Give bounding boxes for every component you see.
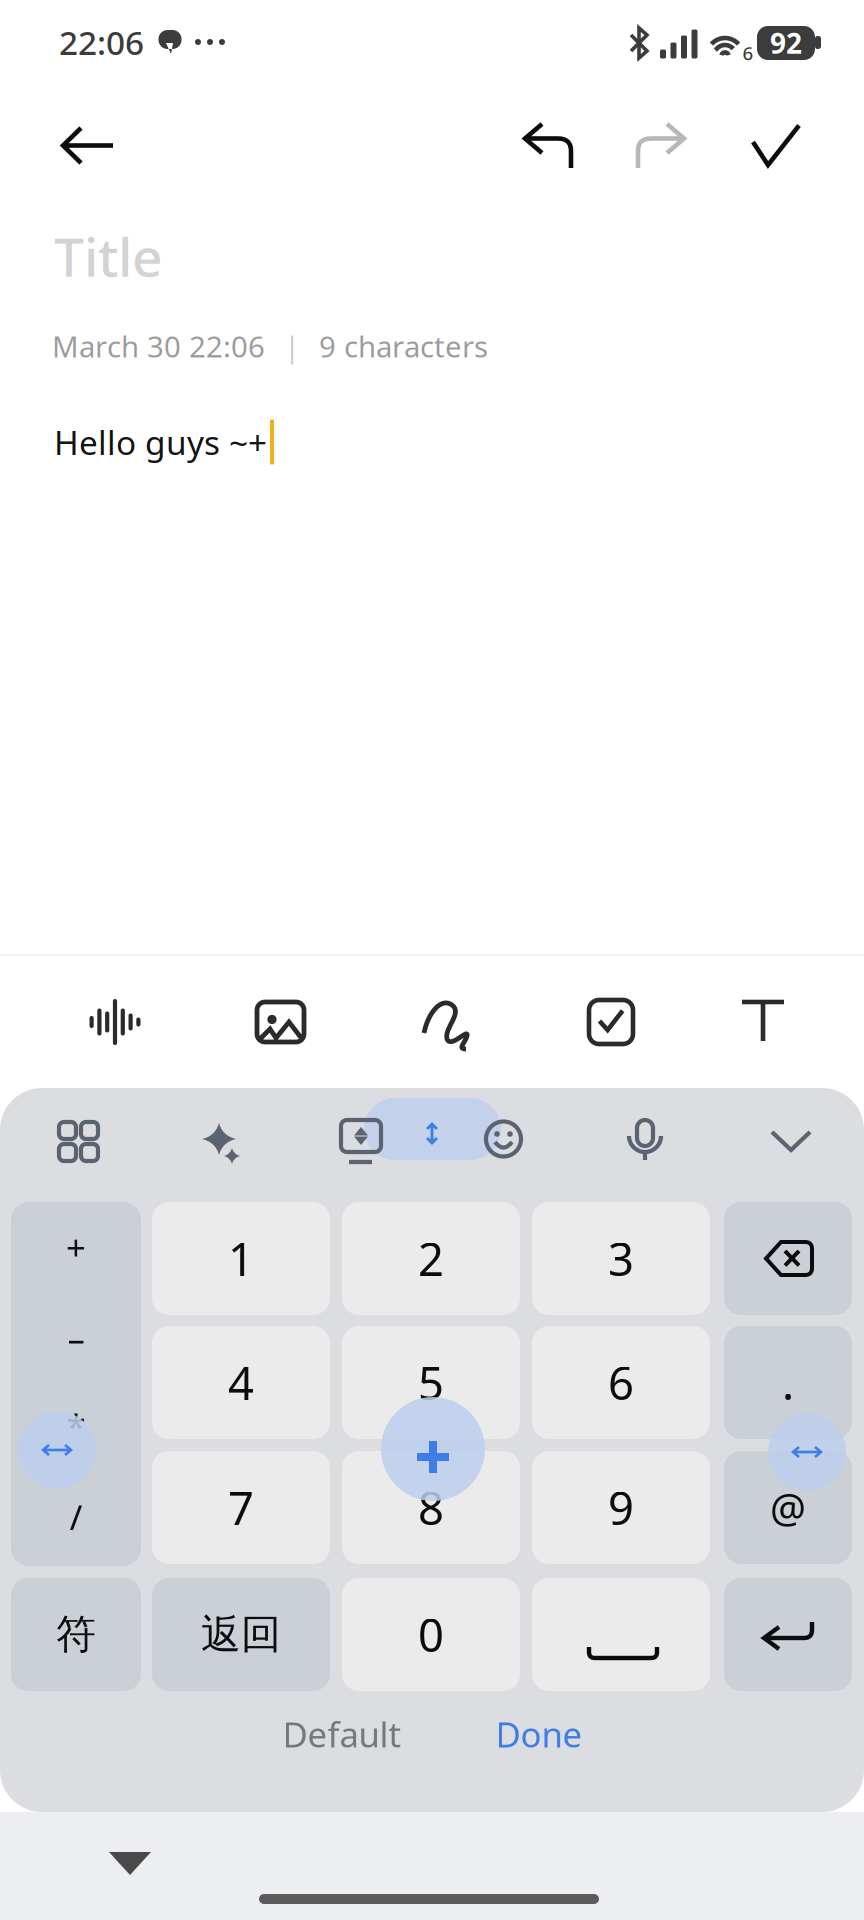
button[interactable]: Smart suggestions <box>173 1092 269 1188</box>
staticText: 9 <box>608 1477 634 1538</box>
button[interactable]: Checklist <box>543 961 677 1083</box>
button[interactable]: Undo <box>496 86 600 190</box>
staticText: / <box>69 1494 82 1540</box>
button[interactable]: Operators <box>11 1202 141 1566</box>
staticText: Default <box>282 1711 401 1757</box>
staticText: 8 <box>418 1477 444 1538</box>
staticText: 3 <box>608 1228 634 1289</box>
button[interactable]: . <box>724 1326 852 1439</box>
button[interactable]: Text formatting <box>696 961 830 1083</box>
button[interactable]: Redo <box>610 86 714 190</box>
staticText: 6 <box>742 41 753 65</box>
staticText: 2 <box>418 1228 444 1289</box>
button[interactable]: Insert image <box>213 961 347 1083</box>
staticText: March 30 22:06 <box>52 326 265 365</box>
button[interactable]: Return <box>724 1578 852 1691</box>
staticText: – <box>67 1315 84 1361</box>
button[interactable]: 0 <box>342 1578 520 1691</box>
staticText: 6 <box>608 1352 634 1413</box>
staticText: | <box>284 326 300 365</box>
button[interactable]: Resize keyboard <box>404 1096 460 1176</box>
button[interactable]: Done <box>459 1699 619 1769</box>
staticText: @ <box>770 1481 806 1534</box>
button[interactable]: Delete <box>724 1202 852 1315</box>
button[interactable]: Back <box>36 86 140 190</box>
button[interactable]: Hide keyboard <box>748 1092 834 1184</box>
button[interactable]: 符 <box>11 1578 141 1691</box>
staticText: 9 characters <box>319 326 488 365</box>
staticText: 返回 <box>201 1610 281 1659</box>
staticText: 22:06 <box>59 20 144 64</box>
button[interactable]: Draw <box>379 961 513 1083</box>
staticText: 0 <box>418 1604 444 1665</box>
button[interactable]: Back <box>76 1814 184 1914</box>
button[interactable]: Space <box>532 1578 710 1691</box>
staticText: + <box>66 1224 86 1270</box>
button[interactable]: 5 <box>342 1326 520 1439</box>
staticText: 4 <box>228 1352 254 1413</box>
button[interactable]: Emoji <box>470 1097 538 1181</box>
button[interactable]: Voice input <box>605 1096 685 1184</box>
staticText: Title <box>54 221 163 291</box>
staticText: 7 <box>228 1477 254 1538</box>
button[interactable]: Record audio <box>48 961 182 1083</box>
button[interactable]: 8 <box>342 1451 520 1564</box>
staticText: 92 <box>770 24 802 62</box>
button[interactable]: 4 <box>152 1326 330 1439</box>
staticText: 5 <box>418 1352 444 1413</box>
staticText: 1 <box>228 1228 254 1289</box>
staticText: 符 <box>56 1610 96 1659</box>
button[interactable]: 1 <box>152 1202 330 1315</box>
staticText: . <box>782 1352 794 1413</box>
staticText: Hello guys ~+ <box>54 420 267 464</box>
button[interactable]: 9 <box>532 1451 710 1564</box>
button[interactable]: 3 <box>532 1202 710 1315</box>
button[interactable]: 返回 <box>152 1578 330 1691</box>
button[interactable]: 6 <box>532 1326 710 1439</box>
button[interactable]: Default <box>242 1699 442 1769</box>
staticText: * <box>66 1403 85 1449</box>
button[interactable]: Keyboard layouts <box>28 1092 124 1188</box>
button[interactable]: 7 <box>152 1451 330 1564</box>
staticText: Done <box>495 1711 582 1757</box>
button[interactable]: @ <box>724 1451 852 1564</box>
button[interactable]: 2 <box>342 1202 520 1315</box>
button[interactable]: Confirm <box>724 86 828 190</box>
button[interactable]: Input methods <box>320 1094 402 1178</box>
